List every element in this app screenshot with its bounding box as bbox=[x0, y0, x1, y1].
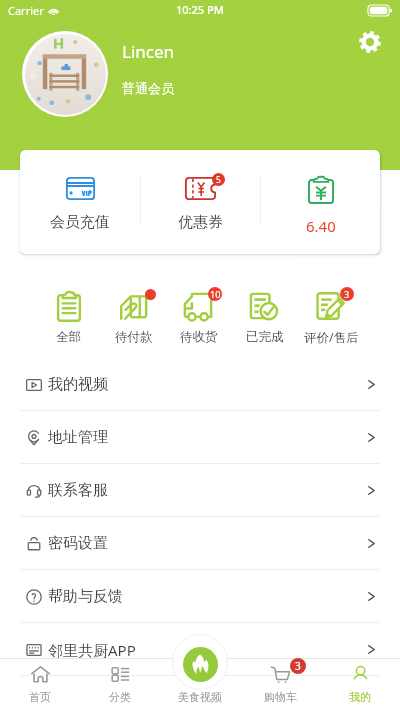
button[interactable]: 已完成 bbox=[232, 290, 298, 355]
button[interactable]: 待付款 bbox=[101, 290, 166, 355]
button[interactable]: 5 bbox=[141, 150, 260, 254]
staticText: 帮助与反馈 bbox=[48, 587, 123, 606]
staticText: 5 bbox=[216, 174, 221, 186]
staticText: Lincen bbox=[122, 40, 175, 63]
button[interactable]: 全部 bbox=[36, 290, 101, 355]
staticText: 待付款 bbox=[115, 329, 153, 345]
button[interactable]: 美食视频 bbox=[183, 647, 218, 682]
staticText: 会员充值 bbox=[50, 213, 110, 232]
staticText: 邻里共厨APP bbox=[48, 640, 136, 660]
staticText: 10 bbox=[210, 288, 221, 300]
staticText: 3 bbox=[344, 288, 350, 300]
button[interactable]: 美食视频 bbox=[160, 658, 240, 710]
button[interactable]: 邻里共厨APP bbox=[0, 623, 400, 676]
button[interactable]: Settings bbox=[358, 30, 382, 54]
button[interactable]: 首页 bbox=[0, 658, 80, 710]
staticText: Carrier bbox=[8, 3, 44, 18]
button[interactable]: 我的视频 bbox=[0, 358, 400, 411]
button[interactable]: 地址管理 bbox=[0, 411, 400, 464]
staticText: 分类 bbox=[109, 690, 131, 704]
staticText: 地址管理 bbox=[48, 428, 108, 447]
staticText: 评价/售后 bbox=[304, 329, 359, 346]
staticText: 全部 bbox=[56, 329, 81, 345]
button[interactable]: 密码设置 bbox=[0, 517, 400, 570]
button[interactable]: 联系客服 bbox=[0, 464, 400, 517]
staticText: 我的视频 bbox=[48, 375, 108, 394]
button[interactable]: 10 bbox=[166, 290, 232, 355]
staticText: 优惠券 bbox=[178, 213, 223, 232]
staticText: 购物车 bbox=[264, 690, 297, 704]
staticText: 我的 bbox=[349, 690, 371, 704]
button[interactable]: 3 bbox=[298, 290, 364, 355]
button[interactable]: 6.40 bbox=[261, 150, 380, 254]
staticText: 美食视频 bbox=[178, 690, 222, 704]
button[interactable]: 我的 bbox=[320, 658, 400, 710]
staticText: 已完成 bbox=[246, 329, 284, 345]
staticText: 联系客服 bbox=[48, 481, 108, 500]
staticText: 待收货 bbox=[180, 329, 218, 345]
button[interactable]: 3 bbox=[240, 658, 320, 710]
staticText: 6.40 bbox=[306, 216, 336, 236]
button[interactable]: Avatar bbox=[22, 31, 108, 117]
staticText: 首页 bbox=[29, 690, 51, 704]
staticText: 3 bbox=[295, 659, 301, 673]
button[interactable]: 会员充值 bbox=[20, 150, 140, 254]
staticText: 密码设置 bbox=[48, 534, 108, 553]
button[interactable]: 帮助与反馈 bbox=[0, 570, 400, 623]
button[interactable]: 分类 bbox=[80, 658, 160, 710]
staticText: 普通会员 bbox=[122, 80, 174, 96]
staticText: 10:25 PM bbox=[176, 2, 224, 17]
